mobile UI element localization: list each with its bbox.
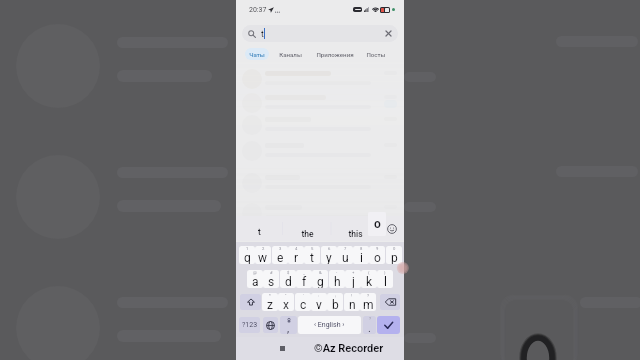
staticText: . xyxy=(368,322,371,334)
staticText: d xyxy=(285,275,292,288)
button[interactable]: Каналы xyxy=(275,48,306,60)
staticText: ©Az Recorder xyxy=(314,342,384,355)
button[interactable]: ! xyxy=(344,293,360,311)
staticText: t xyxy=(261,29,264,39)
button[interactable]: the xyxy=(283,216,331,241)
button[interactable]: Backspace xyxy=(380,294,400,310)
staticText: Посты xyxy=(366,51,386,58)
staticText: h xyxy=(334,275,341,288)
other: Clear xyxy=(384,29,393,38)
button[interactable]: Emoji xyxy=(382,220,402,238)
staticText: " xyxy=(285,293,287,298)
staticText: ; xyxy=(335,293,336,298)
staticText: p xyxy=(391,251,398,264)
button[interactable]: 2 xyxy=(255,246,271,264)
button[interactable]: ; xyxy=(327,293,343,311)
staticText: ? xyxy=(367,293,369,298)
staticText: this xyxy=(348,229,363,239)
button[interactable]: ?123 xyxy=(239,317,260,333)
staticText: e xyxy=(277,251,284,264)
button[interactable]: t xyxy=(236,216,282,241)
staticText: ? xyxy=(369,316,371,321)
staticText: r xyxy=(294,251,299,264)
staticText: 5 xyxy=(311,246,314,251)
staticText: 9 xyxy=(376,246,379,251)
button[interactable]: Search xyxy=(242,25,398,42)
button[interactable]: ( xyxy=(361,270,377,288)
staticText: ‹ English › xyxy=(314,321,345,329)
button[interactable]: 8 xyxy=(353,246,369,264)
button[interactable]: 3 xyxy=(272,246,288,264)
staticText: # xyxy=(270,270,273,275)
button[interactable]: Shift xyxy=(240,294,261,310)
staticText: y xyxy=(326,251,332,264)
staticText: b xyxy=(332,298,339,311)
other: Search xyxy=(248,30,256,38)
staticText: 1 xyxy=(246,246,249,251)
button[interactable]: 6 xyxy=(321,246,337,264)
button[interactable]: 0 xyxy=(386,246,402,264)
staticText: Чаты xyxy=(249,51,265,58)
staticText: ! xyxy=(351,293,353,298)
staticText: z xyxy=(267,298,273,311)
button[interactable]: + xyxy=(345,270,361,288)
staticText: 20:37 xyxy=(249,6,267,14)
staticText: 6 xyxy=(328,246,331,251)
staticText: 3 xyxy=(279,246,282,251)
button[interactable]: & xyxy=(312,270,328,288)
button[interactable]: 5 xyxy=(304,246,320,264)
staticText: u xyxy=(342,251,349,264)
staticText: ) xyxy=(384,270,386,275)
button[interactable]: * xyxy=(262,293,278,311)
button[interactable]: Чаты xyxy=(245,48,269,60)
button[interactable]: - xyxy=(329,270,345,288)
staticText: 8 xyxy=(360,246,363,251)
button[interactable]: this xyxy=(331,216,379,241)
button[interactable]: " xyxy=(278,293,294,311)
staticText: & xyxy=(319,270,322,275)
button[interactable]: $ xyxy=(280,270,296,288)
button[interactable]: # xyxy=(263,270,279,288)
staticText: x xyxy=(283,298,289,311)
button[interactable]: 1 xyxy=(239,246,255,264)
staticText: o xyxy=(374,217,381,231)
staticText: the xyxy=(301,229,314,239)
button[interactable]: ) xyxy=(377,270,393,288)
button[interactable]: @ xyxy=(247,270,263,288)
staticText: * xyxy=(269,293,271,298)
button[interactable]: 7 xyxy=(337,246,353,264)
staticText: l xyxy=(384,275,387,288)
staticText: Каналы xyxy=(279,51,302,58)
staticText: - xyxy=(336,270,338,275)
staticText: m xyxy=(363,298,374,311)
button[interactable]: _ xyxy=(296,270,312,288)
staticText: 7 xyxy=(344,246,347,251)
button[interactable]: Change language xyxy=(263,317,278,333)
button[interactable]: , xyxy=(280,316,297,334)
staticText: ?123 xyxy=(242,321,258,329)
button[interactable]: Enter xyxy=(377,316,400,334)
staticText: ' xyxy=(303,293,304,298)
button[interactable]: Посты xyxy=(362,48,390,60)
button[interactable]: 4 xyxy=(288,246,304,264)
button[interactable]: Приложения xyxy=(313,48,356,60)
button[interactable]: 9 xyxy=(369,246,385,264)
staticText: 2 xyxy=(262,246,265,251)
staticText: 4 xyxy=(295,246,298,251)
staticText: s xyxy=(268,275,275,288)
button[interactable]: ' xyxy=(295,293,311,311)
staticText: @ xyxy=(253,270,257,275)
staticText: Приложения xyxy=(316,51,354,58)
staticText: f xyxy=(302,275,307,288)
button[interactable]: : xyxy=(311,293,327,311)
staticText: k xyxy=(366,275,373,288)
staticText: n xyxy=(349,298,356,311)
button[interactable]: ? xyxy=(363,316,376,334)
button[interactable]: ? xyxy=(360,293,376,311)
staticText: : xyxy=(318,293,320,298)
button[interactable]: ‹ English › xyxy=(298,316,361,334)
staticText: v xyxy=(316,298,322,311)
staticText: a xyxy=(252,275,259,288)
staticText: _ xyxy=(303,270,305,275)
staticText: ( xyxy=(368,270,370,275)
